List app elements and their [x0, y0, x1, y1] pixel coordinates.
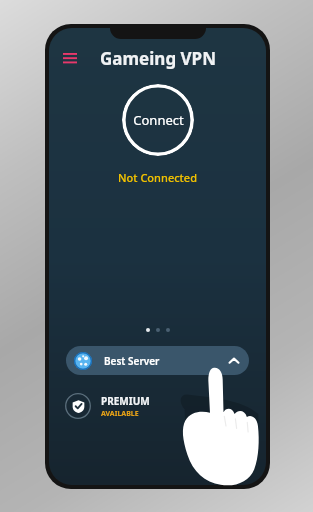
staticText: AVAILABLE	[101, 409, 139, 419]
staticText: Gameing VPN	[100, 47, 216, 70]
button[interactable]: Connect	[122, 84, 194, 156]
staticText: Not Connected	[118, 170, 197, 185]
button[interactable]: Menu	[57, 45, 83, 71]
button[interactable]: PREMIUM	[65, 388, 150, 424]
staticText: Connect	[133, 111, 184, 129]
staticText: Best Server	[104, 354, 160, 368]
button[interactable]: Best Server	[66, 346, 249, 375]
staticText: PREMIUM	[101, 394, 150, 408]
